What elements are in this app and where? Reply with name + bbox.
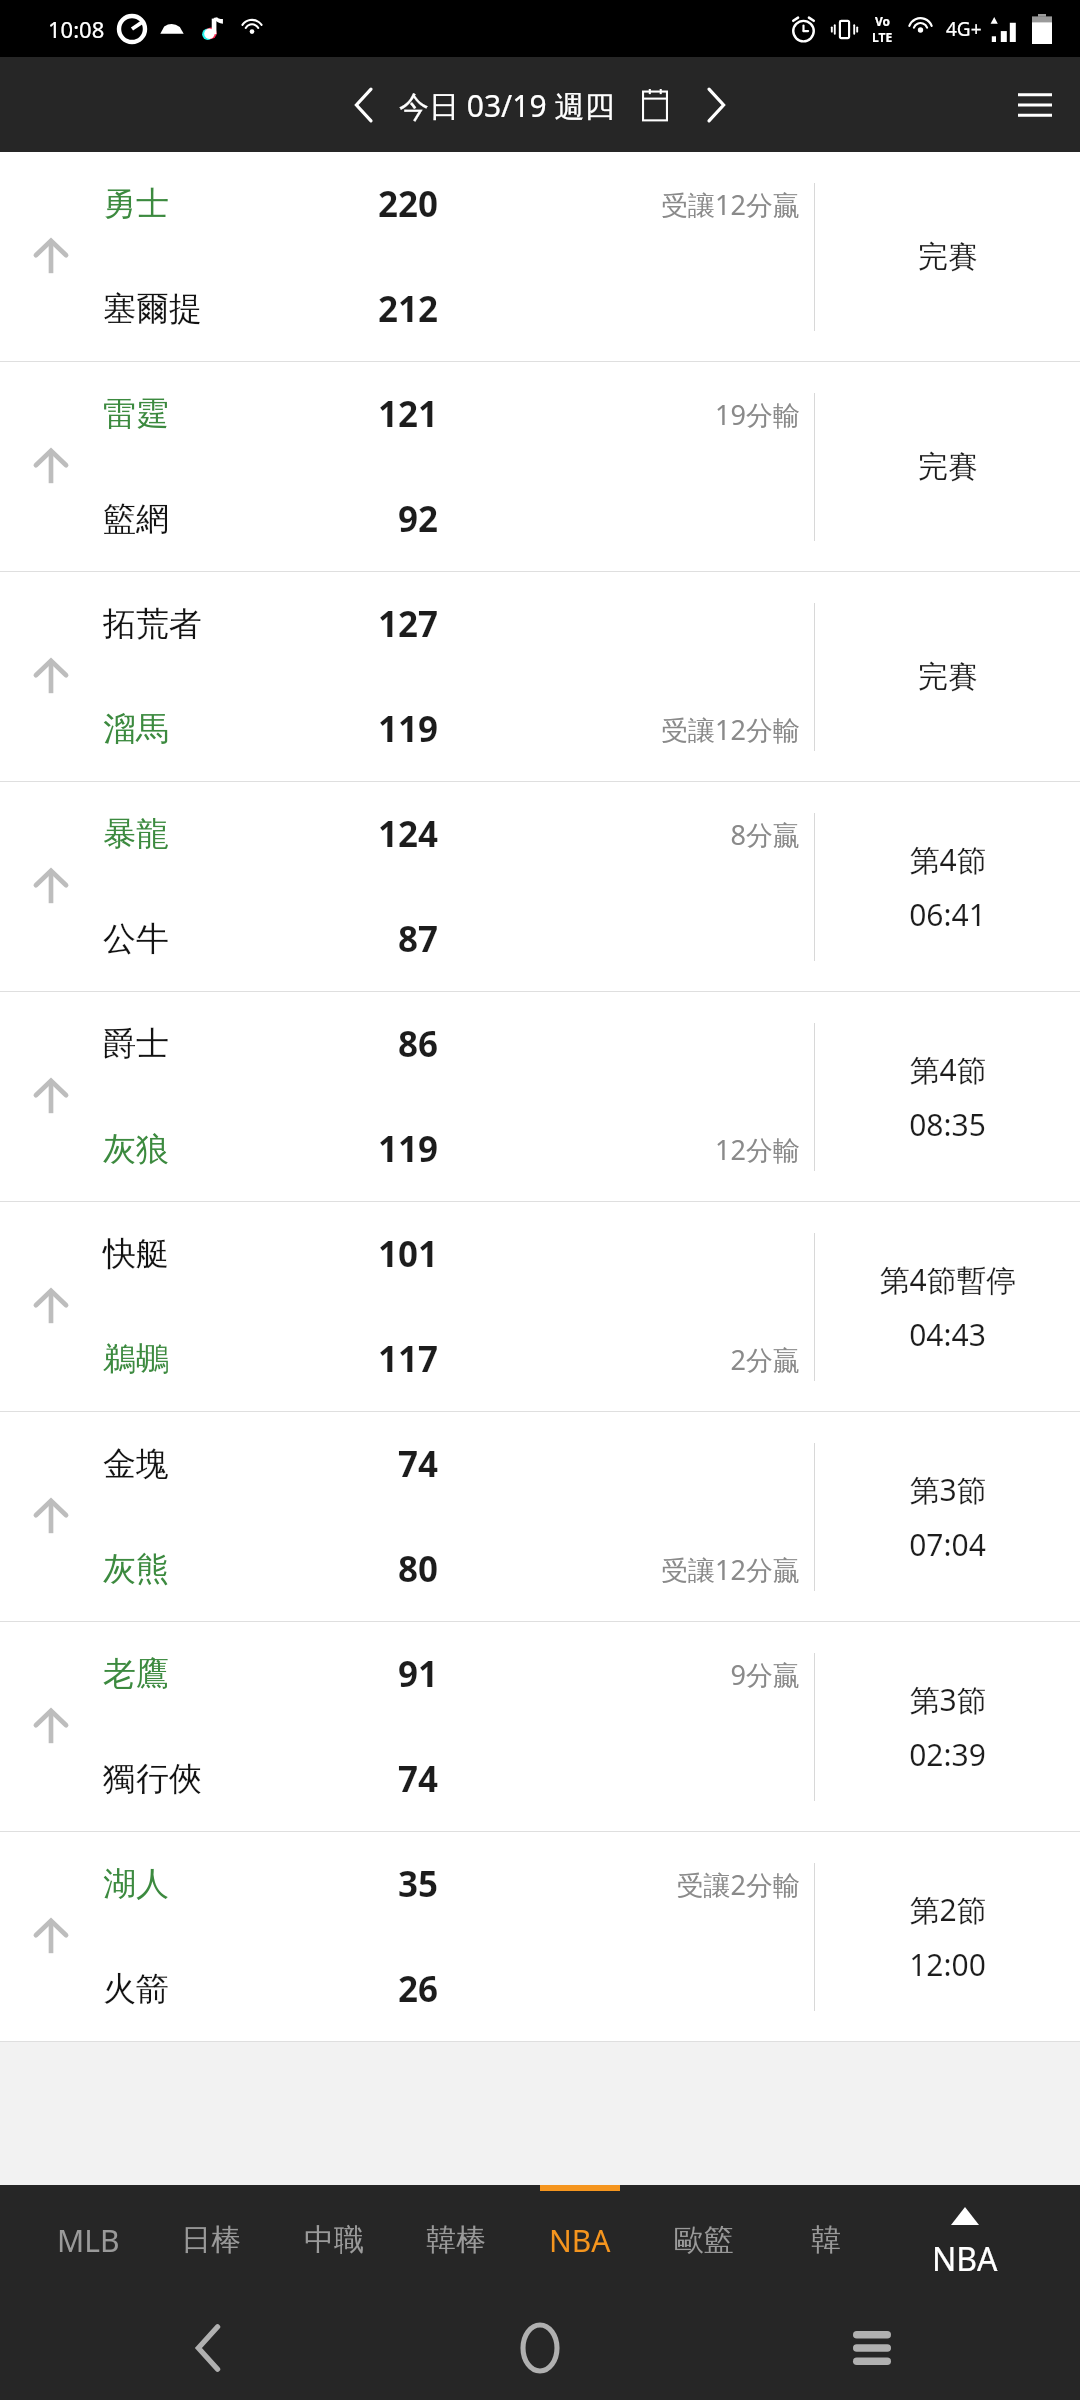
staticText: 02:39 (909, 1734, 986, 1775)
staticText: 8分贏 (470, 816, 800, 853)
staticText: 老鷹 (103, 1653, 169, 1695)
staticText: 受讓12分贏 (470, 186, 800, 223)
staticText: 80 (288, 1545, 438, 1593)
button[interactable]: Previous day (329, 70, 399, 140)
staticText: 124 (288, 810, 438, 858)
staticText: 受讓12分輸 (470, 711, 800, 748)
staticText: 87 (288, 915, 438, 963)
staticText: Vo (875, 13, 891, 29)
staticText: 101 (288, 1230, 438, 1278)
staticText: 勇士 (103, 183, 169, 225)
staticText: 第2節 (909, 1889, 987, 1930)
button[interactable]: Next day (681, 70, 751, 140)
staticText: 4G+ (946, 16, 982, 42)
staticText: 121 (288, 390, 438, 438)
staticText: 04:43 (909, 1314, 986, 1355)
staticText: 韓棒 (426, 2221, 486, 2259)
staticText: 第4節 (909, 839, 987, 880)
staticText: 雷霆 (103, 393, 169, 435)
staticText: 暴龍 (103, 813, 169, 855)
staticText: 06:41 (909, 894, 986, 935)
staticText: 74 (288, 1440, 438, 1488)
staticText: 08:35 (909, 1104, 986, 1145)
staticText: 韓 (811, 2221, 841, 2259)
staticText: 日棒 (181, 2221, 241, 2259)
staticText: 完賽 (918, 658, 978, 696)
staticText: 金塊 (103, 1443, 169, 1485)
button[interactable]: 金塊 (0, 1412, 1080, 1621)
button[interactable]: 老鷹 (0, 1622, 1080, 1831)
button[interactable]: 韓 (770, 2185, 882, 2295)
staticText: NBA (549, 2220, 611, 2261)
staticText: 受讓12分贏 (470, 1551, 800, 1588)
button[interactable]: NBA (880, 2185, 1050, 2295)
staticText: 212 (288, 285, 438, 333)
staticText: 91 (288, 1650, 438, 1698)
staticText: 灰熊 (103, 1548, 169, 1590)
staticText: 鵜鶘 (103, 1338, 169, 1380)
staticText: 07:04 (909, 1524, 986, 1565)
button[interactable]: Calendar (629, 79, 681, 131)
staticText: 117 (288, 1335, 438, 1383)
button[interactable]: 中職 (278, 2185, 390, 2295)
button[interactable]: MLB (32, 2185, 144, 2295)
staticText: 第4節暫停 (879, 1259, 1017, 1300)
staticText: 完賽 (918, 238, 978, 276)
staticText: 2分贏 (470, 1341, 800, 1378)
staticText: 受讓2分輸 (470, 1866, 800, 1903)
button[interactable]: 拓荒者 (0, 572, 1080, 781)
staticText: 12:00 (909, 1944, 986, 1985)
button[interactable]: 湖人 (0, 1832, 1080, 2041)
staticText: 歐籃 (674, 2221, 734, 2259)
button[interactable]: 雷霆 (0, 362, 1080, 571)
staticText: 19分輸 (470, 396, 800, 433)
staticText: 完賽 (918, 448, 978, 486)
staticText: MLB (57, 2220, 120, 2261)
button[interactable]: Back (168, 2308, 248, 2388)
staticText: 今日 03/19 週四 (399, 85, 615, 126)
button[interactable]: Home (500, 2308, 580, 2388)
button[interactable]: 歐籃 (648, 2185, 760, 2295)
staticText: 9分贏 (470, 1656, 800, 1693)
staticText: 籃網 (103, 498, 169, 540)
button[interactable]: 快艇 (0, 1202, 1080, 1411)
staticText: NBA (932, 2237, 998, 2281)
button[interactable]: NBA (524, 2185, 636, 2295)
staticText: 獨行俠 (103, 1758, 202, 1800)
staticText: 溜馬 (103, 708, 169, 750)
staticText: 119 (288, 1125, 438, 1173)
button[interactable]: Recents (832, 2308, 912, 2388)
staticText: 12分輸 (470, 1131, 800, 1168)
staticText: 35 (288, 1860, 438, 1908)
staticText: 127 (288, 600, 438, 648)
staticText: 第3節 (909, 1469, 987, 1510)
staticText: 火箭 (103, 1968, 169, 2010)
staticText: 快艇 (103, 1233, 169, 1275)
staticText: 10:08 (48, 14, 105, 44)
staticText: 湖人 (103, 1863, 169, 1905)
button[interactable]: 勇士 (0, 152, 1080, 361)
staticText: 119 (288, 705, 438, 753)
button[interactable]: 韓棒 (400, 2185, 512, 2295)
staticText: 中職 (304, 2221, 364, 2259)
staticText: LTE (872, 29, 893, 45)
staticText: 第4節 (909, 1049, 987, 1090)
staticText: 92 (288, 495, 438, 543)
staticText: 塞爾提 (103, 288, 202, 330)
button[interactable]: Menu (990, 60, 1080, 150)
staticText: 拓荒者 (103, 603, 202, 645)
staticText: 公牛 (103, 918, 169, 960)
staticText: 220 (288, 180, 438, 228)
button[interactable]: 爵士 (0, 992, 1080, 1201)
staticText: 26 (288, 1965, 438, 2013)
staticText: 74 (288, 1755, 438, 1803)
staticText: 灰狼 (103, 1128, 169, 1170)
staticText: 第3節 (909, 1679, 987, 1720)
staticText: 爵士 (103, 1023, 169, 1065)
staticText: 86 (288, 1020, 438, 1068)
button[interactable]: 暴龍 (0, 782, 1080, 991)
button[interactable]: 日棒 (155, 2185, 267, 2295)
